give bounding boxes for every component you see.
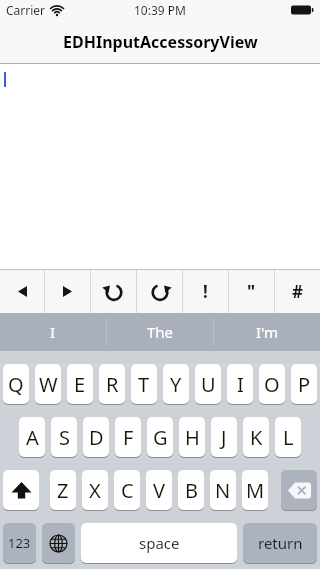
staticText: Carrier bbox=[6, 2, 46, 18]
button[interactable]: U bbox=[195, 364, 221, 404]
staticText: " bbox=[247, 280, 256, 303]
staticText: U bbox=[201, 371, 216, 398]
button[interactable]: F bbox=[115, 417, 141, 457]
button[interactable]: J bbox=[211, 417, 237, 457]
button[interactable]: X bbox=[82, 470, 108, 510]
button[interactable]: V bbox=[146, 470, 172, 510]
staticText: W bbox=[39, 371, 58, 398]
button[interactable] bbox=[137, 270, 182, 313]
staticText: A bbox=[26, 424, 39, 451]
button[interactable]: B bbox=[178, 470, 204, 510]
staticText: I bbox=[50, 322, 56, 342]
staticText: F bbox=[123, 424, 134, 451]
button[interactable]: The bbox=[107, 313, 213, 351]
button[interactable]: ! bbox=[183, 270, 228, 313]
button[interactable]: return bbox=[243, 523, 317, 563]
staticText: 10:39 PM bbox=[134, 2, 186, 18]
staticText: space bbox=[139, 533, 180, 553]
button[interactable] bbox=[3, 470, 39, 510]
button[interactable]: L bbox=[275, 417, 301, 457]
button[interactable] bbox=[91, 270, 136, 313]
staticText: X bbox=[89, 477, 101, 504]
staticText: T bbox=[138, 371, 150, 398]
button[interactable] bbox=[281, 470, 317, 510]
button[interactable]: Y bbox=[163, 364, 189, 404]
staticText: I bbox=[237, 371, 244, 398]
staticText: E bbox=[74, 371, 86, 398]
staticText: The bbox=[147, 322, 174, 342]
staticText: R bbox=[106, 371, 119, 398]
button[interactable]: K bbox=[243, 417, 269, 457]
button[interactable]: 123 bbox=[3, 523, 36, 563]
staticText: C bbox=[121, 477, 134, 504]
button[interactable]: W bbox=[35, 364, 61, 404]
button[interactable]: # bbox=[275, 270, 320, 313]
button[interactable]: T bbox=[131, 364, 157, 404]
staticText: EDHInputAccessoryView bbox=[63, 31, 258, 53]
button[interactable]: H bbox=[179, 417, 205, 457]
button[interactable]: M bbox=[242, 470, 268, 510]
button[interactable] bbox=[0, 64, 320, 269]
button[interactable]: I bbox=[0, 313, 106, 351]
staticText: G bbox=[153, 424, 168, 451]
button[interactable]: P bbox=[291, 364, 317, 404]
button[interactable] bbox=[42, 523, 75, 563]
button[interactable]: E bbox=[67, 364, 93, 404]
button[interactable] bbox=[45, 270, 90, 313]
staticText: J bbox=[221, 424, 227, 451]
staticText: P bbox=[298, 371, 311, 398]
button[interactable]: I'm bbox=[214, 313, 320, 351]
staticText: S bbox=[59, 424, 70, 451]
button[interactable]: R bbox=[99, 364, 125, 404]
staticText: D bbox=[89, 424, 104, 451]
button[interactable]: N bbox=[210, 470, 236, 510]
staticText: M bbox=[246, 477, 265, 504]
staticText: Y bbox=[170, 371, 182, 398]
staticText: I'm bbox=[256, 322, 279, 342]
button[interactable]: D bbox=[83, 417, 109, 457]
button[interactable]: Q bbox=[3, 364, 29, 404]
button[interactable]: A bbox=[19, 417, 45, 457]
button[interactable]: " bbox=[229, 270, 274, 313]
staticText: return bbox=[258, 533, 303, 553]
staticText: Q bbox=[8, 371, 24, 398]
staticText: ! bbox=[203, 280, 208, 303]
staticText: K bbox=[250, 424, 263, 451]
button[interactable]: O bbox=[259, 364, 285, 404]
button[interactable]: G bbox=[147, 417, 173, 457]
staticText: H bbox=[185, 424, 200, 451]
staticText: L bbox=[283, 424, 294, 451]
staticText: N bbox=[215, 477, 231, 504]
button[interactable]: C bbox=[114, 470, 140, 510]
staticText: B bbox=[185, 477, 198, 504]
button[interactable]: S bbox=[51, 417, 77, 457]
button[interactable]: I bbox=[227, 364, 253, 404]
button[interactable] bbox=[0, 270, 44, 313]
button[interactable]: space bbox=[81, 523, 237, 563]
staticText: O bbox=[264, 371, 280, 398]
staticText: # bbox=[292, 280, 303, 303]
staticText: 123 bbox=[8, 534, 31, 552]
button[interactable]: Z bbox=[50, 470, 76, 510]
staticText: Z bbox=[57, 477, 69, 504]
staticText: V bbox=[153, 477, 165, 504]
